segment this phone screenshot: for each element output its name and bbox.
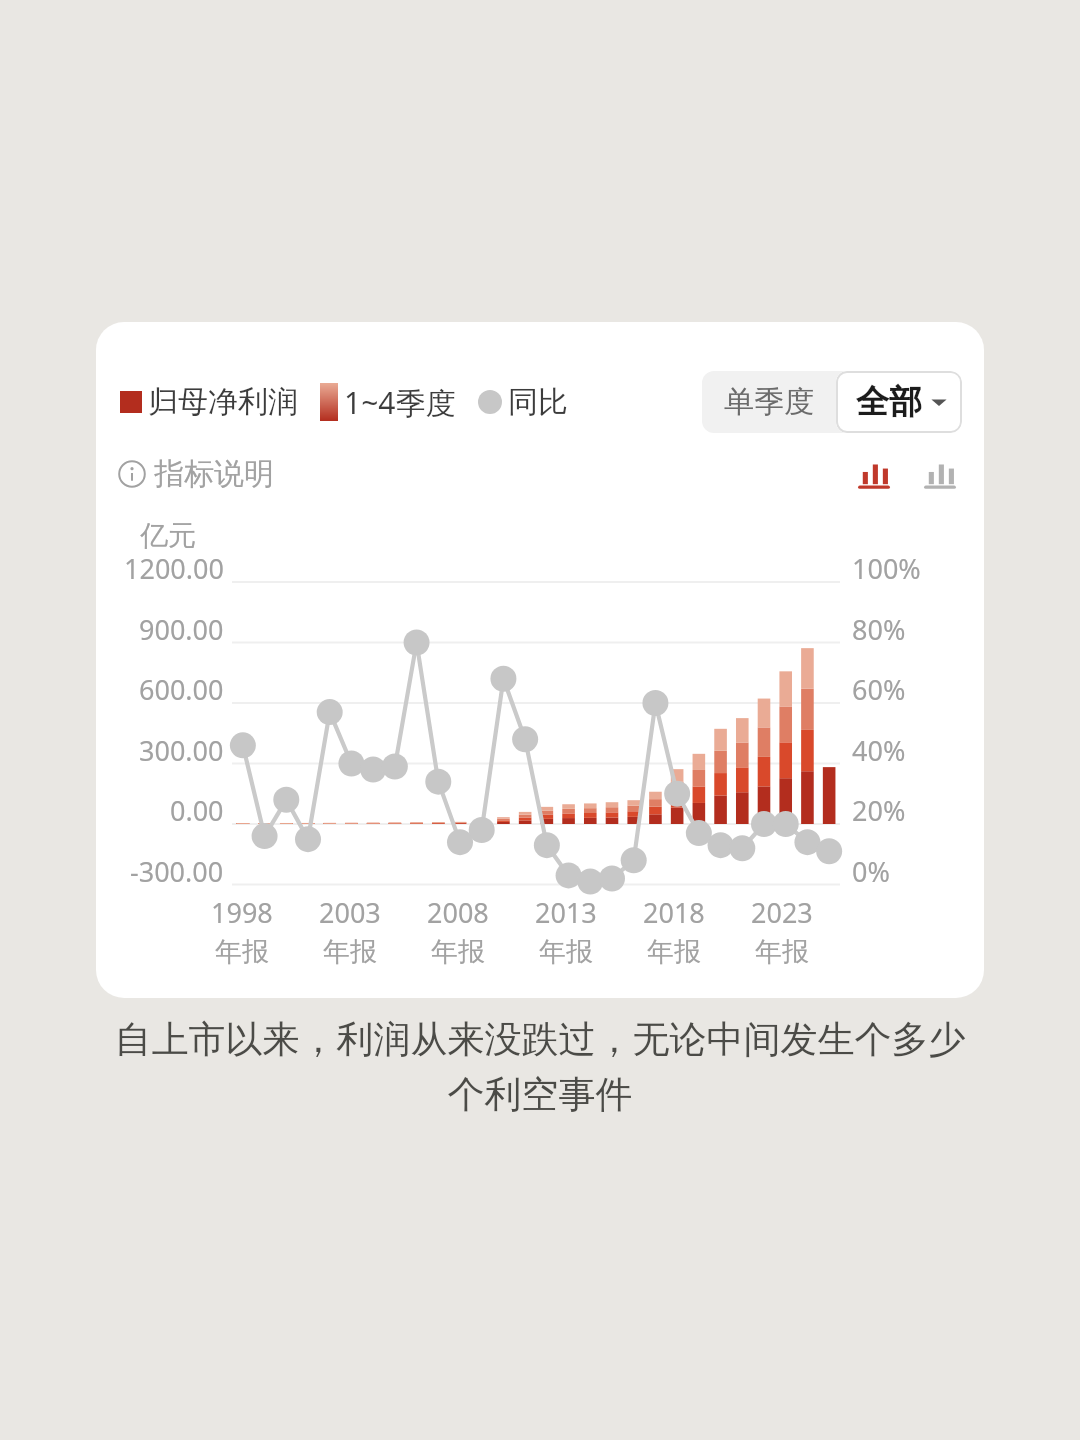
staticText: 300.00 xyxy=(139,732,224,769)
button[interactable]: 单季度 xyxy=(702,371,836,433)
staticText: 年报 xyxy=(215,935,269,969)
staticText: 全部 xyxy=(856,381,922,423)
staticText: 年报 xyxy=(755,935,809,969)
staticText: 年报 xyxy=(539,935,593,969)
staticText: 0.00 xyxy=(170,792,224,829)
staticText: 1200.00 xyxy=(124,550,224,587)
staticText: 600.00 xyxy=(139,671,224,708)
staticText: 亿元 xyxy=(140,518,196,553)
staticText: 单季度 xyxy=(724,383,814,421)
staticText: 100% xyxy=(852,550,921,587)
staticText: 年报 xyxy=(431,935,485,969)
staticText: 60% xyxy=(852,671,906,708)
staticText: 40% xyxy=(852,732,906,769)
staticText: 80% xyxy=(852,611,906,648)
button[interactable]: Bar chart view xyxy=(918,452,962,496)
staticText: 自上市以来，利润从来没跌过，无论中间发生个多少个利空事件 xyxy=(100,1016,980,1118)
staticText: 年报 xyxy=(647,935,701,969)
staticText: 2018 xyxy=(643,894,705,931)
staticText: -300.00 xyxy=(130,853,224,890)
staticText: 年报 xyxy=(323,935,377,969)
staticText: 2013 xyxy=(535,894,597,931)
staticText: 900.00 xyxy=(139,611,224,648)
button[interactable]: 指标说明 xyxy=(118,455,274,493)
staticText: 0% xyxy=(852,853,890,890)
staticText: 1998 xyxy=(211,894,273,931)
staticText: 2003 xyxy=(319,894,381,931)
staticText: 2008 xyxy=(427,894,489,931)
staticText: 同比 xyxy=(508,383,568,421)
button[interactable]: Stacked bar chart view xyxy=(852,452,896,496)
staticText: 1~4季度 xyxy=(344,382,456,423)
staticText: 2023 xyxy=(751,894,813,931)
button[interactable]: 全部 xyxy=(836,371,962,433)
staticText: 归母净利润 xyxy=(148,383,298,421)
staticText: 20% xyxy=(852,792,906,829)
staticText: 指标说明 xyxy=(154,455,274,493)
